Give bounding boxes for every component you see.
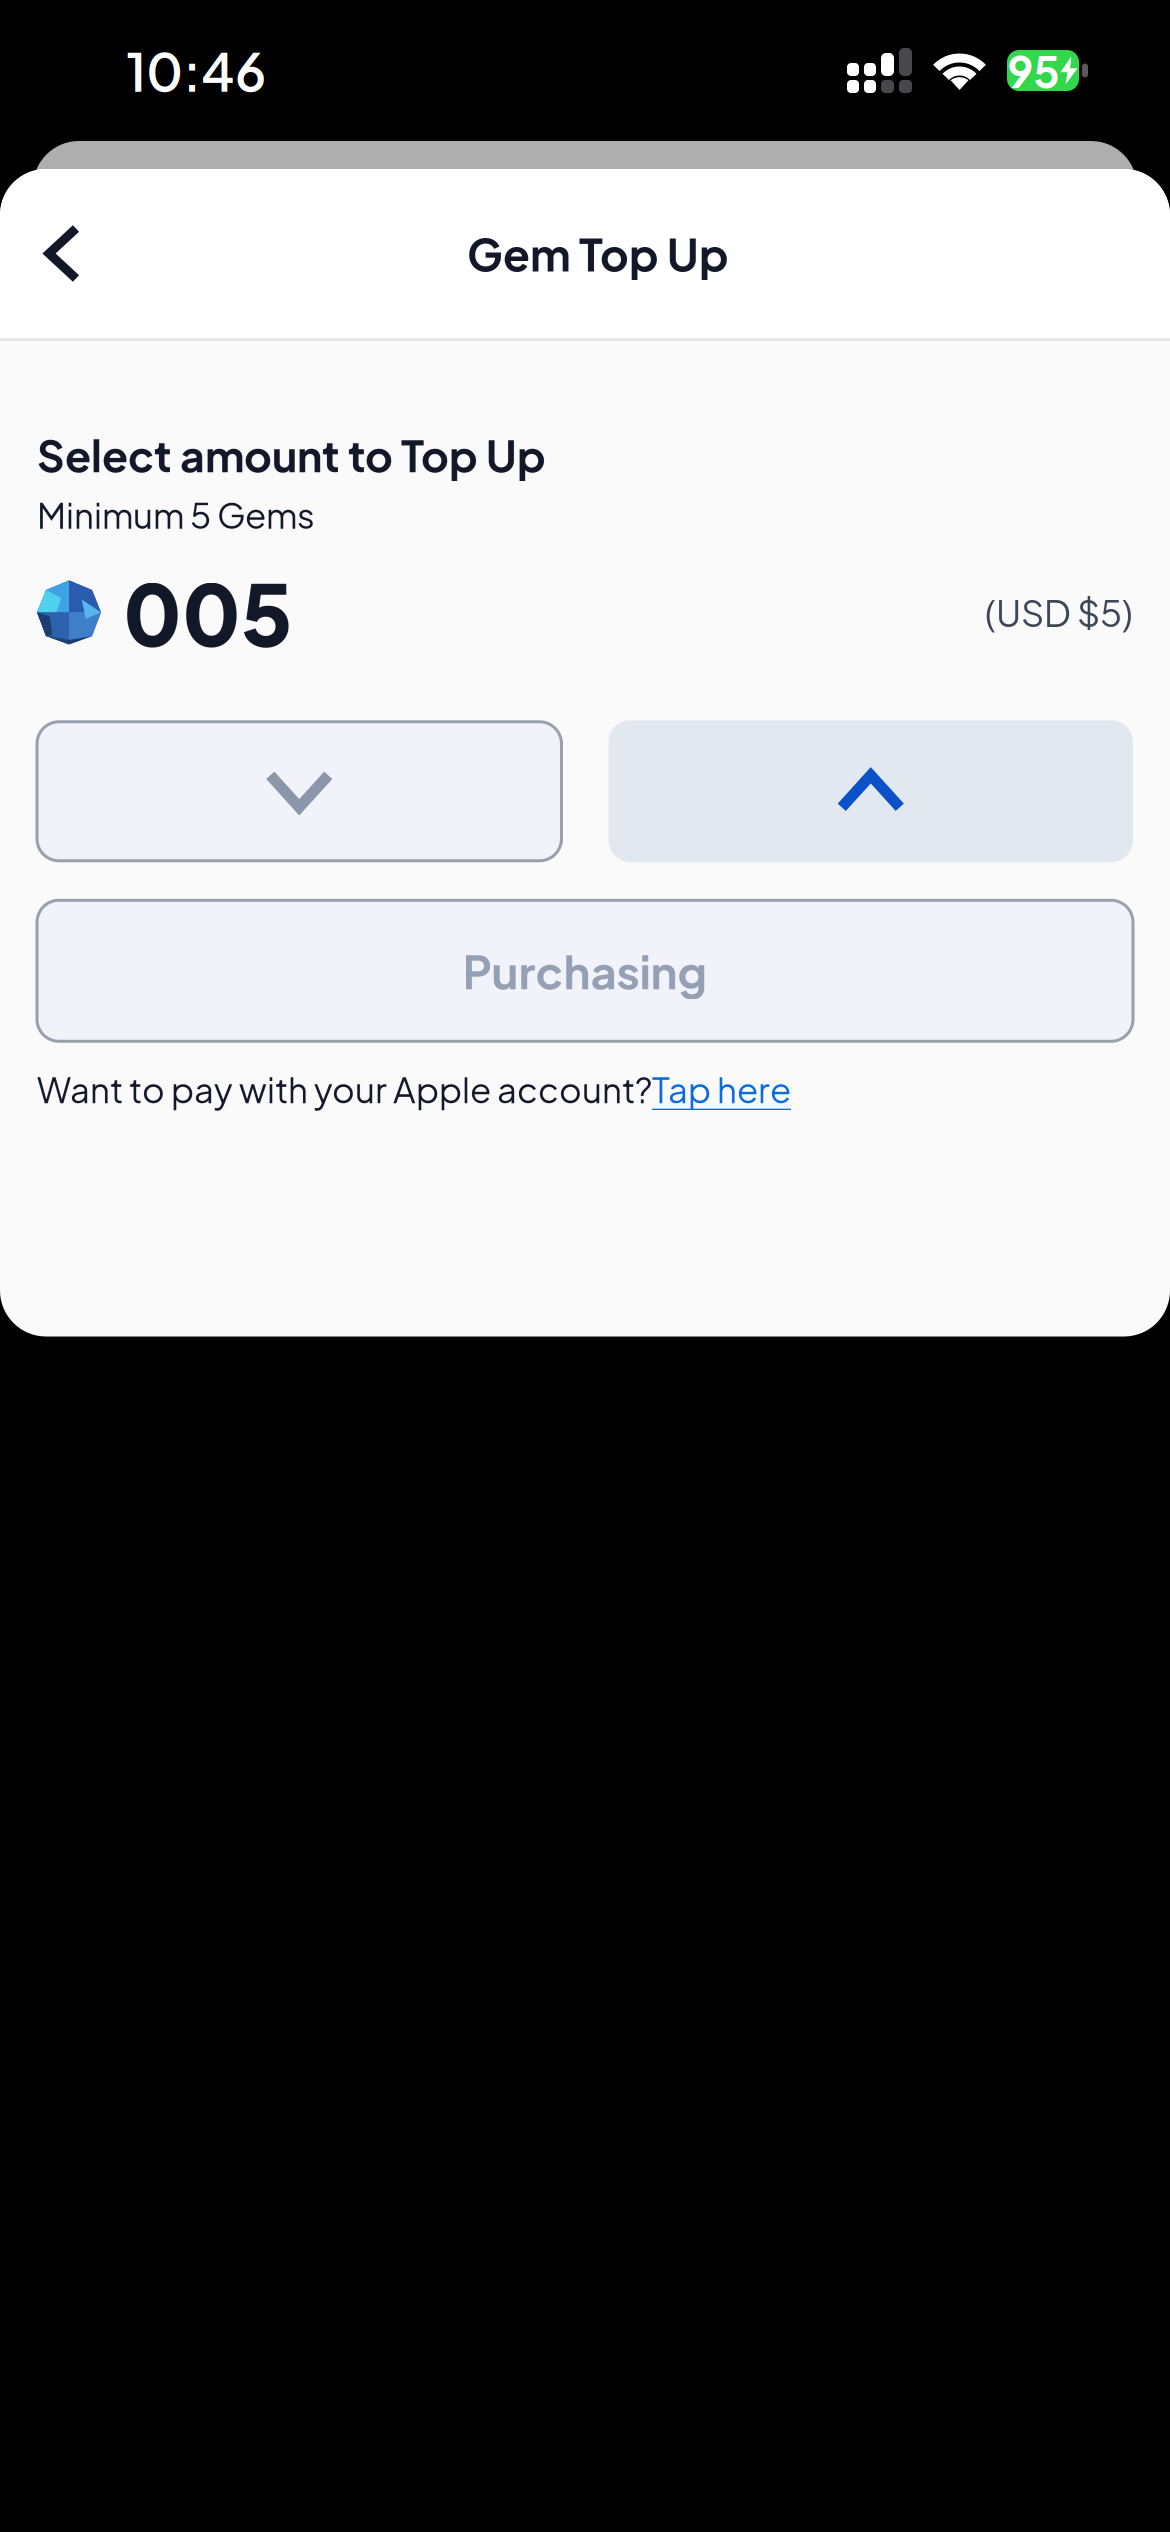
staticText: 005 [123,559,293,665]
button[interactable]: Decrease amount [37,722,561,861]
staticText: (USD $5) [985,590,1133,635]
staticText: Minimum 5 Gems [37,493,315,536]
button[interactable]: Increase amount [608,720,1133,862]
staticText: 95 [1007,44,1059,97]
staticText: Purchasing [462,942,707,999]
button[interactable]: Tap here [652,1067,791,1111]
staticText: Select amount to Top Up [37,428,546,482]
staticText: Want to pay with your Apple account? [37,1067,652,1111]
staticText: Gem Top Up [467,226,729,281]
staticText: Tap here [652,1067,791,1111]
button[interactable]: Purchasing [37,900,1133,1041]
staticText: 10:46 [126,38,266,103]
button[interactable]: Back [0,190,111,316]
